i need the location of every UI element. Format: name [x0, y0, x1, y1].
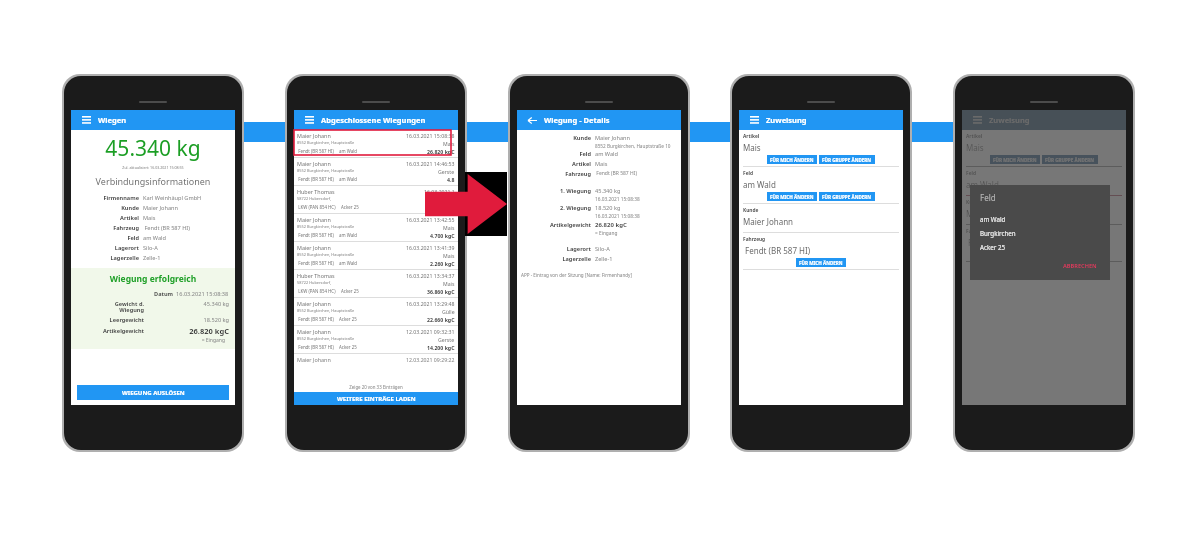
staticText: Karl Weinhäupl GmbH [143, 194, 202, 202]
staticText: 16.03.2021 13:29:48 [406, 300, 455, 307]
staticText: 26.820 kgC [595, 221, 627, 229]
staticText: Mais [595, 160, 608, 168]
staticText: Lagerort [521, 245, 591, 253]
staticText: Maier Johann [966, 208, 1017, 219]
staticText: Fendt (BR 587 HI) [297, 148, 334, 154]
button[interactable]: Maier Johann [294, 326, 458, 353]
button[interactable]: Maier Johann [294, 242, 458, 269]
staticText: Fendt (BR 587 HI) [297, 176, 334, 182]
staticText: 45.340 kg [595, 187, 621, 195]
staticText: 8552 Burgkirchen, Hauptstraße 10 [595, 143, 671, 149]
staticText: WIEGUNG AUSLÖSEN [122, 389, 185, 397]
button[interactable]: Maier Johann [294, 298, 458, 325]
staticText: Abgeschlossene Wiegungen [321, 115, 426, 125]
button[interactable]: FÜR MICH ÄNDERN [799, 258, 843, 267]
button[interactable]: FÜR GRUPPE ÄNDERN [822, 192, 872, 201]
staticText: 16.03.2021 15:08:38 [406, 132, 455, 139]
button[interactable]: am Wald [980, 212, 1100, 226]
button[interactable]: Menu [80, 114, 92, 126]
staticText: Fendt (BR 587 HI) [143, 224, 190, 232]
button[interactable]: FÜR MICH ÄNDERN [770, 192, 814, 201]
staticText: 8552 Burgkirchen, Hauptstraße [297, 336, 355, 341]
staticText: Zul. aktualisiert: 16.03.2021 15:08:55 [77, 165, 229, 170]
button[interactable]: Maier Johann [294, 214, 458, 241]
staticText: 8552 Burgkirchen, Hauptstraße [297, 224, 355, 229]
staticText: Mais [966, 142, 984, 153]
staticText: Kunde [743, 207, 759, 214]
button[interactable]: FÜR GRUPPE ÄNDERN [1045, 155, 1095, 164]
staticText: Artikel [77, 214, 139, 222]
button[interactable]: Back [526, 114, 538, 126]
button[interactable]: Huber Thomas [294, 186, 458, 213]
button[interactable]: Maier Johann [294, 158, 458, 185]
staticText: Gülle [442, 308, 455, 315]
button[interactable]: Menu [303, 114, 315, 126]
staticText: Wiegung erfolgreich [77, 273, 229, 285]
staticText: = Eingang [77, 337, 225, 344]
staticText: am Wald [339, 232, 358, 238]
staticText: 16.03.2021 13:41:39 [406, 244, 455, 251]
staticText: am Wald [980, 215, 1006, 223]
button[interactable]: Maier Johann [294, 130, 458, 157]
staticText: 16.03.2021 14:46:53 [406, 160, 455, 167]
button[interactable]: Menu [748, 114, 760, 126]
staticText: 16.03.2021 1 [424, 188, 455, 195]
staticText: Artikelgewicht [521, 221, 591, 229]
staticText: 26.820 kgC [147, 326, 229, 336]
button[interactable]: FÜR MICH ÄNDERN [993, 155, 1037, 164]
button[interactable]: WIEGUNG AUSLÖSEN [77, 385, 229, 400]
staticText: Wiegen [98, 115, 127, 125]
staticText: Kunde [77, 204, 139, 212]
staticText: 45.340 kg [147, 300, 229, 308]
staticText: Gewicht d. Wiegung [77, 300, 144, 314]
staticText: LKW (PAN 854 HC) [297, 204, 336, 210]
staticText: 16.03.2021 15:08:38 [176, 290, 229, 298]
staticText: Mais [443, 140, 455, 147]
staticText: 4.8 [447, 176, 455, 183]
staticText: Artikel [521, 160, 591, 168]
staticText: Maier Johann [297, 328, 331, 335]
staticText: FÜR MICH ÄNDERN [799, 260, 843, 266]
staticText: am Wald [595, 150, 618, 158]
staticText: Acker 25 [341, 204, 359, 210]
button[interactable]: FÜR GRUPPE ÄNDERN [822, 155, 872, 164]
staticText: ABBRECHEN [1063, 262, 1097, 270]
button[interactable]: WEITERE EINTRÄGE LADEN [294, 392, 458, 405]
staticText: = Eingang [595, 230, 618, 237]
staticText: Lagerzelle [521, 255, 591, 263]
staticText: Leergewicht [77, 316, 144, 324]
staticText: Silo-A [595, 245, 610, 253]
staticText: Fahrzeug [521, 170, 591, 178]
staticText: 8552 Burgkirchen, Hauptstraße [297, 252, 355, 257]
staticText: 58722 Hubersdorf, [297, 196, 332, 201]
staticText: FÜR GRUPPE ÄNDERN [1045, 157, 1095, 163]
button[interactable]: ABBRECHEN [1060, 259, 1100, 273]
staticText: am Wald [339, 176, 358, 182]
staticText: Fendt (BR 587 HI) [595, 170, 637, 177]
staticText: APP - Eintrag von der Sitzung [Name: Fir… [521, 272, 632, 278]
staticText: Mais [443, 224, 455, 231]
staticText: Wiegung - Details [544, 115, 610, 125]
button[interactable]: FÜR MICH ÄNDERN [770, 155, 814, 164]
button[interactable]: Burgkirchen [980, 226, 1100, 240]
staticText: 8552 Burgkirchen, Hauptstraße [297, 168, 355, 173]
button[interactable]: Acker 25 [980, 240, 1100, 254]
staticText: Maier Johann [595, 134, 630, 142]
button[interactable]: Menu [971, 114, 983, 126]
staticText: Fendt (BR 587 HI) [297, 344, 334, 350]
staticText: 2.260 kgC [430, 260, 455, 267]
staticText: 12.03.2021 09:32:31 [406, 328, 455, 335]
staticText: Fahrzeug [77, 224, 139, 232]
staticText: Mais [143, 214, 156, 222]
button[interactable]: Huber Thomas [294, 270, 458, 297]
staticText: FÜR GRUPPE ÄNDERN [822, 194, 872, 200]
staticText: Fendt (BR 587 HI) [743, 245, 811, 256]
staticText: Artikel [743, 133, 760, 140]
staticText: Artikelgewicht [77, 327, 144, 335]
staticText: Feld [743, 170, 753, 177]
staticText: Kunde [966, 199, 982, 206]
staticText: FÜR MICH ÄNDERN [770, 157, 814, 163]
staticText: 4.700 kgC [430, 232, 455, 239]
